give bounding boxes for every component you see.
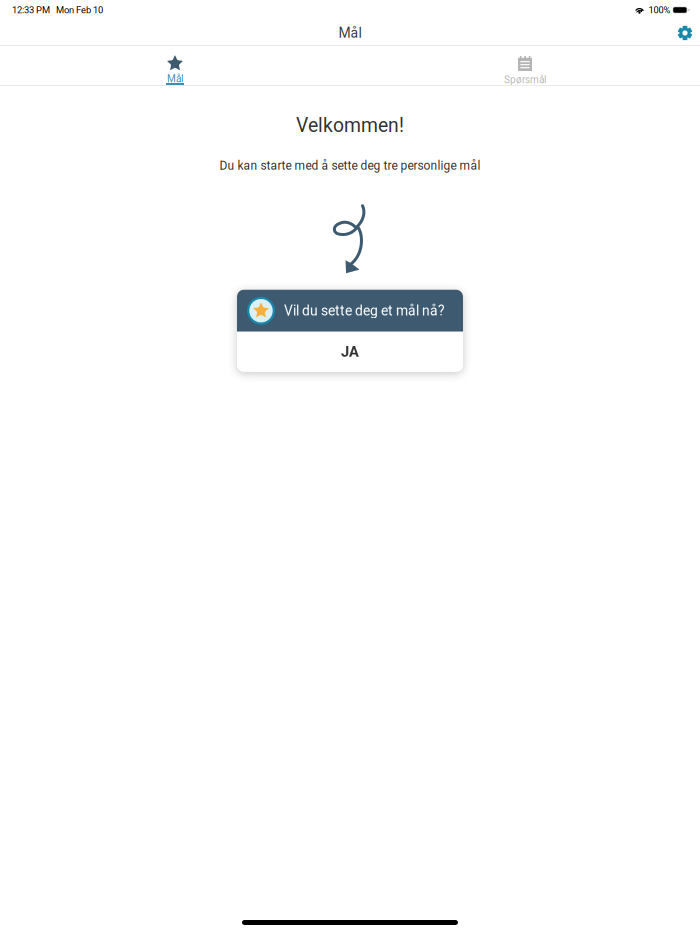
staticText: JA (341, 343, 359, 360)
staticText: 100% (648, 4, 670, 15)
staticText: Spørsmål (504, 74, 546, 86)
button[interactable]: JA (237, 332, 463, 372)
staticText: Du kan starte med å sette deg tre person… (219, 159, 480, 173)
staticText: Velkommen! (296, 114, 404, 137)
staticText: Mål (167, 73, 183, 85)
staticText: Mål (338, 25, 361, 41)
staticText: Mon Feb 10 (56, 4, 103, 15)
button[interactable]: Mål (0, 46, 350, 86)
staticText: 12:33 PM (12, 4, 50, 15)
staticText: Vil du sette deg et mål nå? (284, 303, 445, 319)
button[interactable]: Settings (670, 20, 700, 46)
button[interactable]: Spørsmål (350, 46, 700, 86)
